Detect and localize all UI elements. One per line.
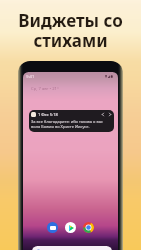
button[interactable]: 1 Фес 5:18 bbox=[29, 110, 114, 132]
staticText: 1 Фес 5:18 bbox=[38, 112, 58, 117]
staticText: Ср, 7 авг • 21° bbox=[31, 86, 59, 92]
staticText: Виджеты со bbox=[0, 9, 141, 32]
button[interactable]: Play Store bbox=[65, 222, 76, 233]
button[interactable]: Next verse bbox=[108, 112, 112, 117]
button[interactable]: Search bbox=[32, 246, 112, 250]
staticText: За все благодарите: ибо такова о вас вол… bbox=[31, 119, 103, 129]
button[interactable]: Previous verse bbox=[101, 112, 105, 117]
button[interactable]: Chrome bbox=[83, 222, 94, 233]
staticText: стихами bbox=[0, 29, 141, 52]
button[interactable]: Mail bbox=[47, 222, 58, 233]
staticText: 9:41 bbox=[26, 74, 35, 80]
